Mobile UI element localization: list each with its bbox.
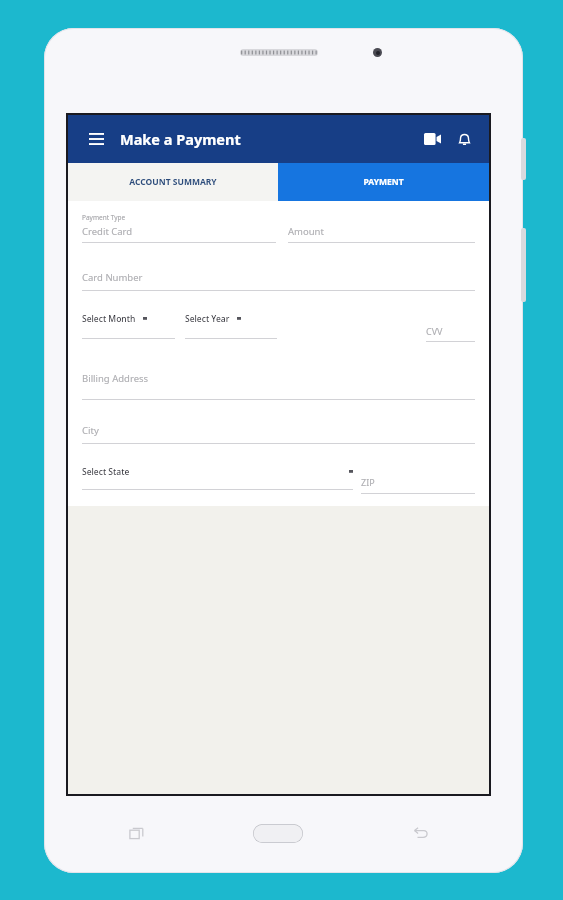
staticText: ACCOUNT SUMMARY bbox=[129, 176, 217, 188]
staticText: Payment Type bbox=[82, 213, 126, 222]
staticText: Select Year bbox=[185, 313, 230, 325]
button[interactable]: Notifications bbox=[451, 126, 477, 152]
button[interactable]: Select Year bbox=[185, 313, 277, 325]
staticText: Credit Card bbox=[82, 225, 133, 238]
button[interactable]: Amount bbox=[288, 225, 475, 243]
button[interactable]: Select State bbox=[82, 466, 353, 478]
button[interactable]: Open navigation menu bbox=[82, 125, 110, 153]
button[interactable]: Select Month bbox=[82, 313, 175, 325]
staticText: ZIP bbox=[361, 476, 375, 488]
button[interactable]: Back bbox=[349, 808, 491, 858]
button[interactable]: City bbox=[82, 424, 475, 444]
button[interactable]: PAYMENT bbox=[278, 163, 489, 201]
staticText: Make a Payment bbox=[120, 129, 241, 149]
button[interactable]: Billing Address bbox=[82, 372, 475, 400]
button[interactable]: Home bbox=[207, 808, 349, 858]
button[interactable]: Video call bbox=[419, 126, 445, 152]
button[interactable]: ACCOUNT SUMMARY bbox=[68, 163, 278, 201]
staticText: City bbox=[82, 424, 99, 437]
staticText: Select Month bbox=[82, 313, 136, 325]
button[interactable]: Recent apps bbox=[66, 808, 207, 858]
staticText: Billing Address bbox=[82, 372, 149, 385]
staticText: Card Number bbox=[82, 271, 143, 284]
staticText: Select State bbox=[82, 466, 130, 478]
button[interactable]: Credit Card bbox=[82, 225, 276, 243]
button[interactable]: Card Number bbox=[82, 271, 475, 291]
staticText: PAYMENT bbox=[363, 176, 404, 188]
staticText: CVV bbox=[426, 325, 443, 337]
staticText: Amount bbox=[288, 225, 324, 238]
